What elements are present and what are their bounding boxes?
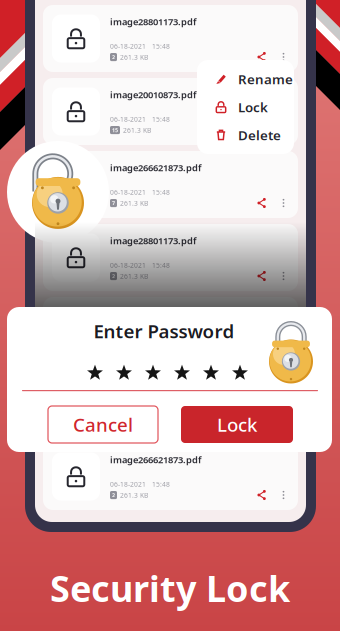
staticText: 06-18-2021 15:48	[110, 407, 170, 416]
staticText: Security Lock	[50, 564, 290, 612]
staticText: 2	[112, 491, 115, 499]
staticText: Delete	[238, 126, 281, 144]
staticText: 06-18-2021 15:48	[110, 42, 170, 51]
button[interactable]: Cancel	[48, 406, 158, 443]
staticText: 2	[112, 53, 115, 61]
button[interactable]: image266621873.pdf	[43, 151, 298, 218]
button[interactable]: image20010873.pdf	[43, 78, 298, 145]
staticText: 2	[112, 418, 115, 426]
button[interactable]: image266621873.pdf	[43, 370, 298, 437]
staticText: Lock	[217, 412, 257, 437]
button[interactable]: image28801173.pdf	[43, 224, 298, 291]
staticText: 06-18-2021 15:48	[110, 261, 170, 270]
button[interactable]: Lock	[181, 406, 293, 443]
staticText: 261.3 KB	[120, 272, 148, 280]
button[interactable]: image266621873.pdf	[43, 443, 298, 510]
button[interactable]: image266621873.pdf	[43, 297, 298, 364]
staticText: Cancel	[73, 412, 133, 437]
staticText: Lock	[238, 98, 268, 116]
staticText: image20010873.pdf	[110, 88, 196, 101]
button[interactable]: Lock	[197, 93, 294, 121]
staticText: image266621873.pdf	[110, 380, 201, 393]
staticText: 261.3 KB	[120, 418, 148, 426]
button[interactable]: image28801173.pdf	[43, 5, 298, 72]
staticText: image28801173.pdf	[110, 234, 196, 247]
staticText: Enter Password	[93, 319, 234, 343]
staticText: 261.3 KB	[120, 491, 148, 499]
button[interactable]: Delete	[197, 121, 294, 149]
staticText: 06-18-2021 15:48	[110, 115, 170, 124]
staticText: image28801173.pdf	[110, 15, 196, 28]
staticText: 15	[112, 126, 118, 134]
button[interactable]: Rename	[197, 65, 294, 93]
staticText: 7	[112, 199, 115, 207]
staticText: 06-18-2021 15:48	[110, 334, 170, 343]
staticText: 261.3 KB	[123, 126, 151, 134]
staticText: 06-18-2021 15:48	[110, 188, 170, 197]
staticText: Rename	[238, 70, 293, 88]
staticText: 261.3 KB	[120, 199, 148, 207]
staticText: 06-18-2021 15:48	[110, 480, 170, 489]
staticText: image266621873.pdf	[110, 161, 201, 174]
staticText: 2	[112, 272, 115, 280]
staticText: 261.3 KB	[120, 53, 148, 61]
staticText: image266621873.pdf	[110, 453, 201, 466]
